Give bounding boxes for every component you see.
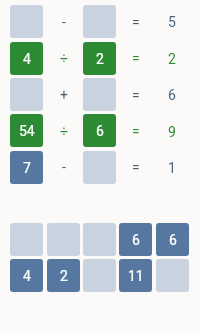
staticText: 2: [60, 268, 68, 284]
button[interactable]: tile 4: [119, 223, 152, 256]
staticText: 5: [168, 14, 176, 30]
button[interactable]: operand two row 1: [83, 5, 116, 38]
button[interactable]: tile 7: [47, 259, 80, 292]
button[interactable]: operand one row 2: [10, 42, 43, 75]
button[interactable]: operand one row 1: [10, 5, 43, 38]
button[interactable]: operand two row 3: [83, 78, 116, 111]
button[interactable]: tile 1: [10, 223, 43, 256]
staticText: =: [132, 14, 140, 30]
staticText: 9: [168, 124, 176, 140]
button[interactable]: operand two row 5: [83, 151, 116, 184]
button[interactable]: operand one row 3: [10, 78, 43, 111]
button[interactable]: tile 10: [156, 259, 189, 292]
button[interactable]: tile 6: [10, 259, 43, 292]
button[interactable]: operand two row 2: [83, 42, 116, 75]
staticText: 4: [23, 51, 31, 67]
staticText: -: [62, 14, 66, 30]
staticText: 2: [168, 51, 176, 67]
staticText: 7: [23, 160, 31, 176]
staticText: 6: [169, 232, 177, 248]
staticText: 6: [168, 87, 176, 103]
button[interactable]: tile 9: [119, 259, 152, 292]
staticText: =: [132, 87, 140, 103]
button[interactable]: tile 2: [47, 223, 80, 256]
staticText: 1: [168, 160, 176, 176]
staticText: 6: [96, 123, 104, 139]
staticText: 11: [128, 268, 144, 284]
staticText: 6: [132, 232, 140, 248]
staticText: ÷: [60, 50, 68, 66]
button[interactable]: operand one row 4: [10, 114, 43, 147]
staticText: 54: [19, 123, 35, 139]
button[interactable]: operand two row 4: [83, 114, 116, 147]
staticText: -: [62, 159, 66, 175]
staticText: +: [60, 87, 68, 103]
button[interactable]: tile 5: [156, 223, 189, 256]
staticText: 2: [96, 51, 104, 67]
button[interactable]: operand one row 5: [10, 151, 43, 184]
staticText: =: [132, 123, 140, 139]
staticText: ÷: [60, 123, 68, 139]
staticText: =: [132, 50, 140, 66]
button[interactable]: tile 3: [83, 223, 116, 256]
staticText: 4: [23, 268, 31, 284]
staticText: =: [132, 159, 140, 175]
button[interactable]: tile 8: [83, 259, 116, 292]
